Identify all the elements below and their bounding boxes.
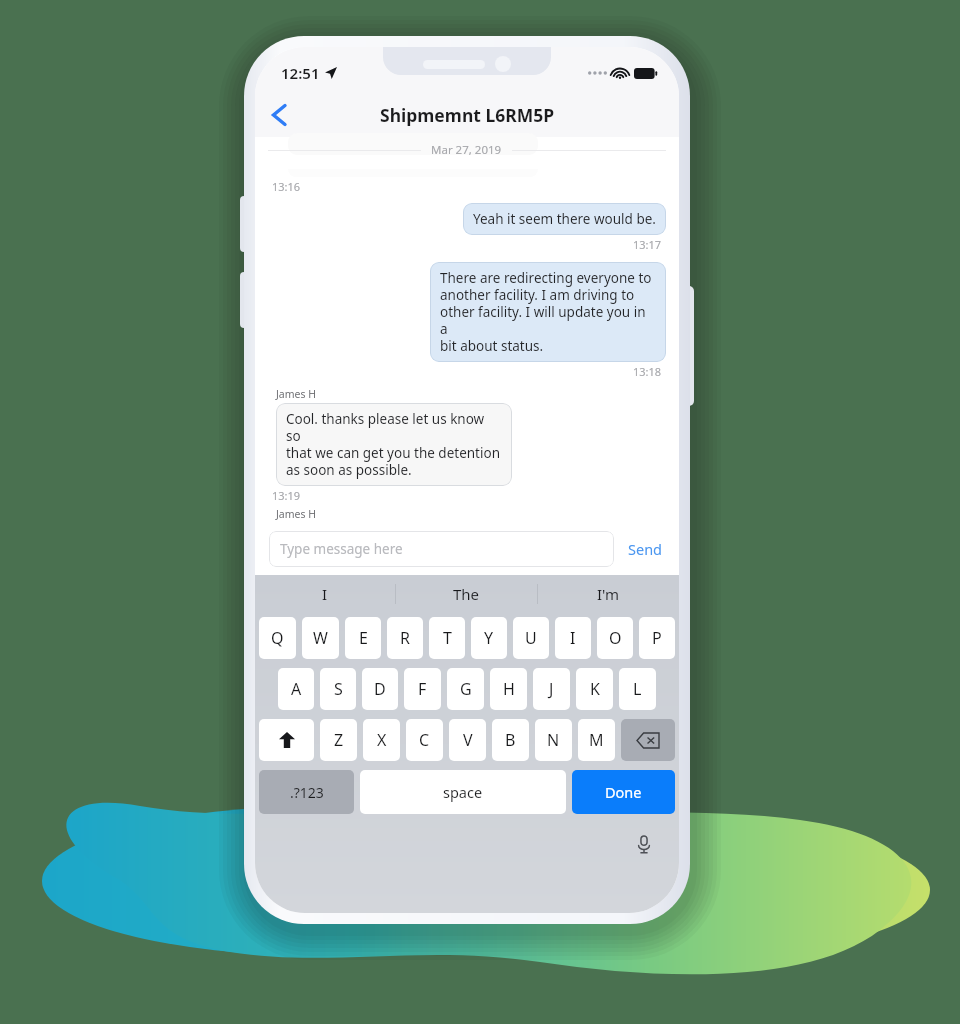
staticText: Type message here — [280, 540, 403, 558]
button[interactable]: X — [363, 719, 400, 761]
button[interactable]: S — [320, 668, 356, 710]
staticText: Y — [484, 627, 494, 649]
button[interactable]: E — [345, 617, 381, 659]
staticText: 13:18 — [633, 364, 662, 379]
button[interactable]: There are redirecting everyone to anothe… — [430, 262, 666, 362]
staticText: K — [590, 678, 600, 700]
staticText: I — [322, 584, 328, 604]
staticText: space — [443, 782, 483, 802]
staticText: G — [460, 678, 472, 700]
staticText: There are redirecting everyone to anothe… — [440, 269, 656, 355]
staticText: D — [374, 678, 386, 700]
button[interactable]: Z — [320, 719, 357, 761]
button[interactable]: R — [387, 617, 423, 659]
staticText: M — [589, 729, 604, 751]
button[interactable]: Dictate — [631, 832, 657, 858]
button[interactable]: T — [429, 617, 465, 659]
button[interactable]: K — [576, 668, 613, 710]
staticText: James H — [276, 507, 317, 521]
staticText: Shipmemnt L6RM5P — [380, 103, 555, 127]
staticText: T — [443, 627, 452, 649]
staticText: 13:16 — [272, 179, 301, 194]
staticText: C — [419, 729, 430, 751]
staticText: I'm — [597, 584, 620, 604]
staticText: 13:19 — [272, 488, 301, 503]
staticText: 12:51 — [281, 63, 320, 83]
staticText: Q — [271, 627, 284, 649]
staticText: Done — [605, 782, 642, 802]
staticText: O — [609, 627, 622, 649]
button[interactable]: M — [578, 719, 615, 761]
staticText: The — [453, 584, 480, 604]
staticText: 13:17 — [633, 237, 662, 252]
staticText: H — [503, 678, 515, 700]
button[interactable]: H — [490, 668, 527, 710]
button[interactable]: C — [406, 719, 443, 761]
staticText: P — [652, 627, 662, 649]
staticText: W — [313, 627, 328, 649]
staticText: Z — [334, 729, 344, 751]
button[interactable]: Type message here — [269, 531, 614, 567]
button[interactable]: I'm — [538, 575, 679, 613]
button[interactable]: W — [302, 617, 339, 659]
button[interactable]: Yeah it seem there would be. — [463, 203, 666, 235]
button[interactable]: Send — [614, 539, 665, 559]
button[interactable]: N — [535, 719, 572, 761]
button[interactable]: Q — [259, 617, 296, 659]
button[interactable]: U — [513, 617, 549, 659]
button[interactable]: Backspace — [621, 719, 675, 761]
staticText: Send — [628, 539, 663, 559]
staticText: E — [359, 627, 368, 649]
staticText: F — [418, 678, 427, 700]
button[interactable]: Back — [255, 93, 301, 137]
staticText: N — [547, 729, 560, 751]
button[interactable]: Shift — [259, 719, 314, 761]
staticText: V — [463, 729, 473, 751]
button[interactable]: V — [449, 719, 486, 761]
staticText: Mar 27, 2019 — [431, 142, 502, 158]
button[interactable]: F — [404, 668, 441, 710]
staticText: S — [334, 678, 343, 700]
button[interactable]: A — [278, 668, 314, 710]
button[interactable]: I — [255, 575, 395, 613]
button[interactable]: I — [555, 617, 591, 659]
staticText: B — [505, 729, 516, 751]
button[interactable]: Y — [471, 617, 507, 659]
staticText: L — [633, 678, 642, 700]
button[interactable]: L — [619, 668, 656, 710]
button[interactable]: J — [533, 668, 570, 710]
staticText: Yeah it seem there would be. — [473, 210, 656, 228]
button[interactable]: B — [492, 719, 529, 761]
button[interactable]: O — [597, 617, 633, 659]
button[interactable]: D — [362, 668, 398, 710]
button[interactable]: Cool. thanks please let us know so that … — [276, 403, 512, 486]
staticText: .?123 — [290, 783, 324, 802]
button[interactable]: P — [639, 617, 675, 659]
staticText: Cool. thanks please let us know so that … — [286, 410, 502, 479]
staticText: U — [525, 627, 537, 649]
staticText: X — [377, 729, 387, 751]
button[interactable]: .?123 — [259, 770, 354, 814]
staticText: R — [400, 627, 410, 649]
button[interactable]: G — [447, 668, 484, 710]
staticText: A — [291, 678, 302, 700]
staticText: James H — [276, 387, 317, 401]
staticText: J — [549, 678, 554, 700]
button[interactable]: The — [396, 575, 537, 613]
button[interactable]: Done — [572, 770, 675, 814]
staticText: I — [570, 627, 576, 649]
button[interactable]: space — [360, 770, 566, 814]
